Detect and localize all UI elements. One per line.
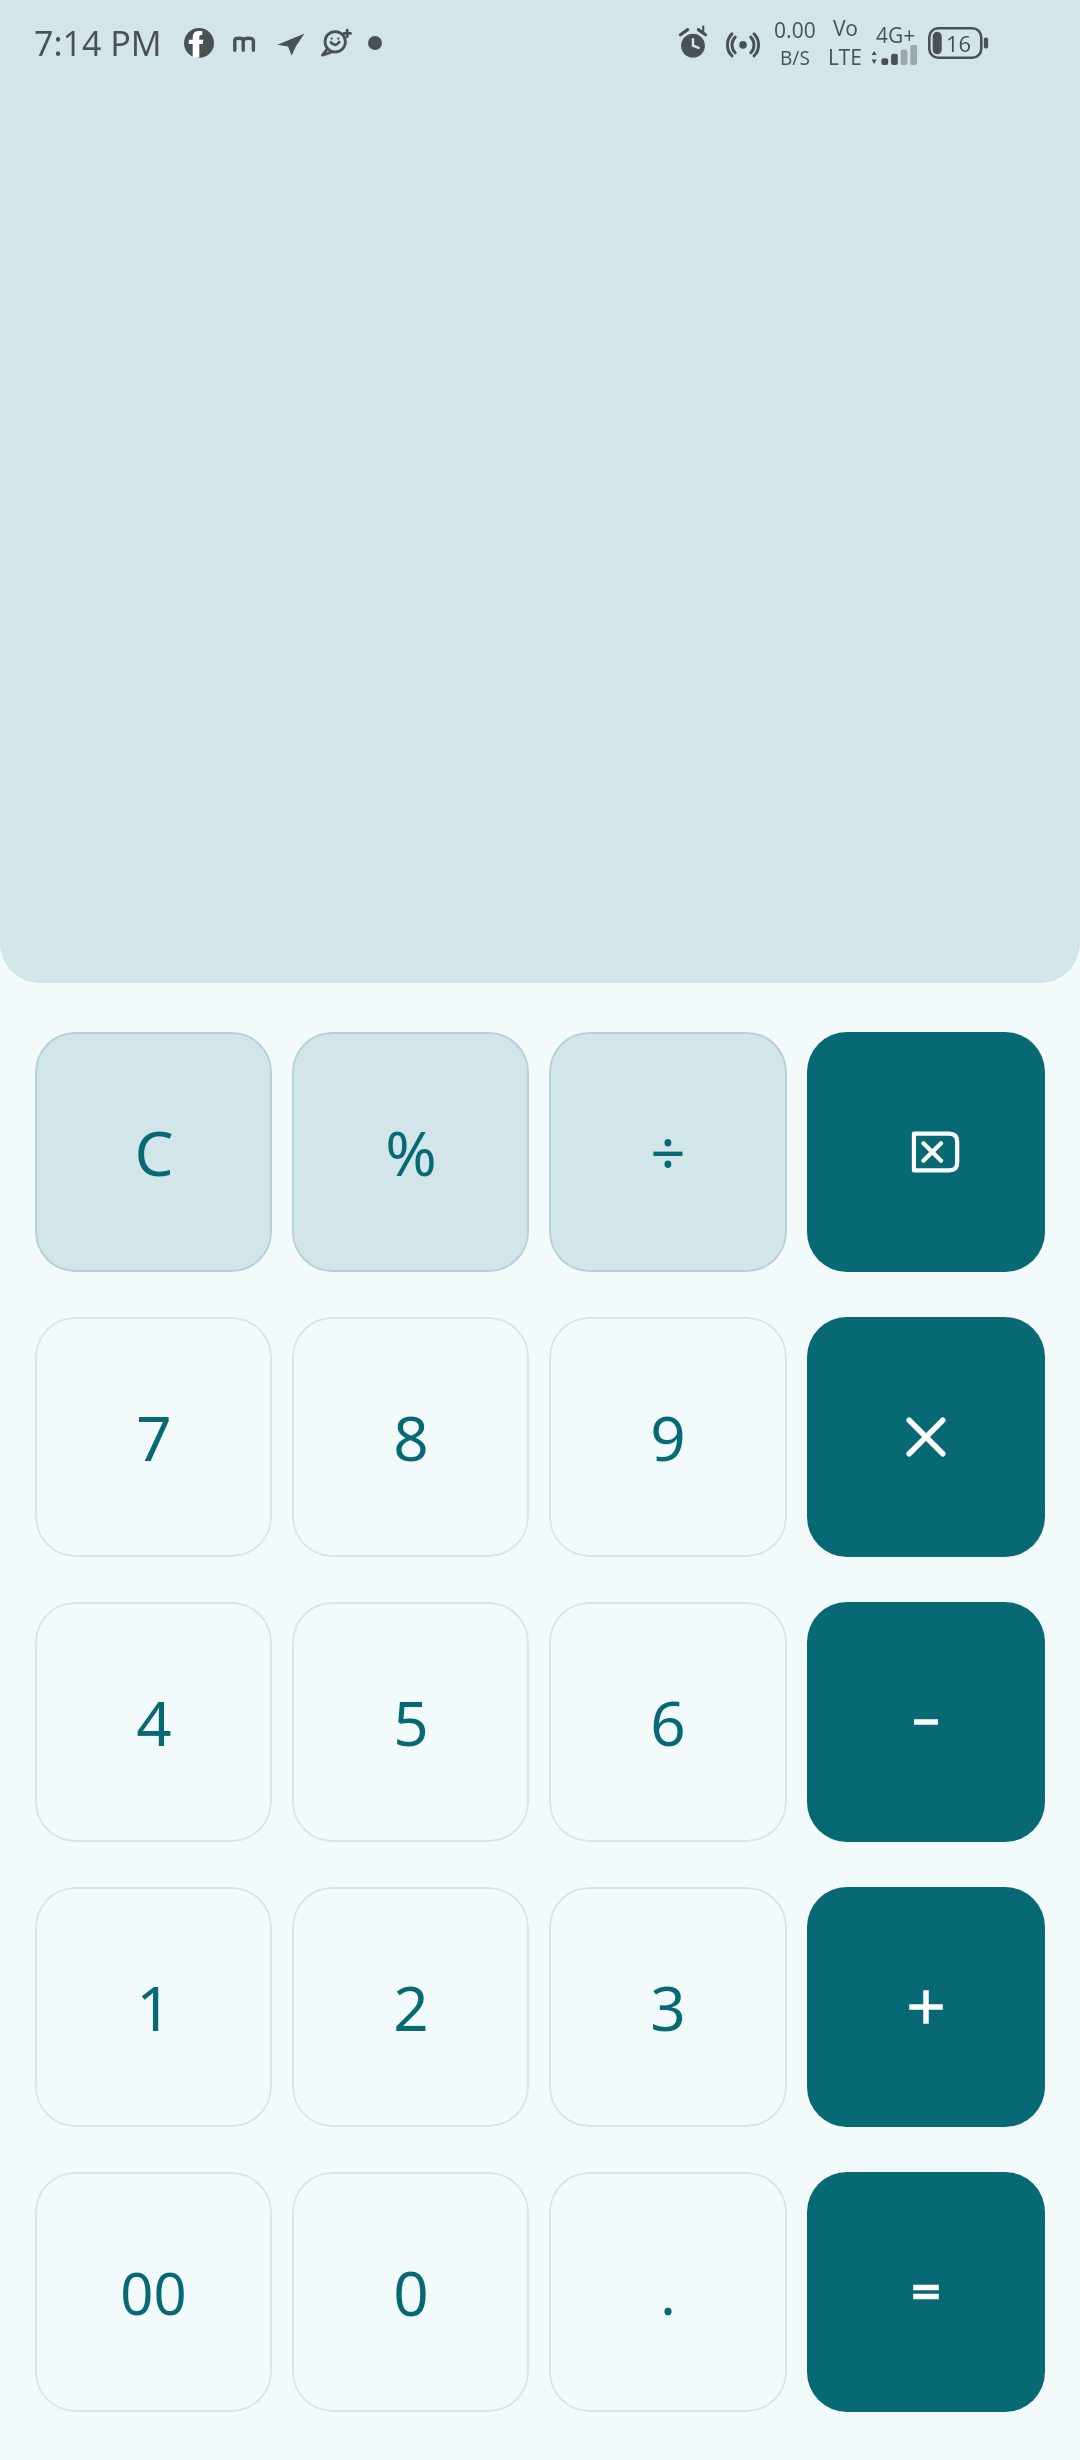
staticText: 3 [650, 1965, 686, 2049]
button[interactable]: 8 [292, 1317, 529, 1557]
staticText: LTE [828, 43, 862, 72]
button[interactable]: 2 [292, 1887, 529, 2127]
staticText: 6 [650, 1680, 686, 1764]
staticText: % [385, 1110, 437, 1194]
staticText: Vo [833, 14, 858, 43]
staticText: C [134, 1110, 174, 1194]
staticText: B/S [780, 45, 810, 71]
staticText: 7 [136, 1395, 172, 1479]
button[interactable]: 4 [35, 1602, 272, 1842]
staticText: 5 [393, 1680, 429, 1764]
button[interactable]: % [292, 1032, 529, 1272]
button[interactable]: 3 [549, 1887, 787, 2127]
button[interactable]: 9 [549, 1317, 787, 1557]
staticText: 0 [393, 2250, 429, 2334]
staticText: 4G+ [876, 21, 916, 50]
staticText: 00 [120, 2253, 187, 2332]
staticText: 9 [650, 1395, 686, 1479]
button[interactable]: 7 [35, 1317, 272, 1557]
button[interactable]: . [549, 2172, 787, 2412]
staticText: 4 [136, 1680, 172, 1764]
button[interactable]: Equals [807, 2172, 1045, 2412]
button[interactable]: Plus [807, 1887, 1045, 2127]
button[interactable]: Minus [807, 1602, 1045, 1842]
staticText: 7:14 PM [34, 20, 162, 66]
button[interactable]: Backspace [807, 1032, 1045, 1272]
staticText: 0.00 [774, 16, 816, 45]
button[interactable]: Multiply [807, 1317, 1045, 1557]
staticText: 8 [393, 1395, 429, 1479]
button[interactable]: 5 [292, 1602, 529, 1842]
button[interactable]: ÷ [549, 1032, 787, 1272]
staticText: 1 [136, 1965, 172, 2049]
staticText: 2 [393, 1965, 429, 2049]
button[interactable]: 0 [292, 2172, 529, 2412]
staticText: 16 [946, 28, 972, 58]
button[interactable]: C [35, 1032, 272, 1272]
staticText: . [660, 2253, 676, 2332]
button[interactable]: 00 [35, 2172, 272, 2412]
button[interactable]: 1 [35, 1887, 272, 2127]
staticText: ÷ [650, 1110, 686, 1194]
button[interactable]: 6 [549, 1602, 787, 1842]
